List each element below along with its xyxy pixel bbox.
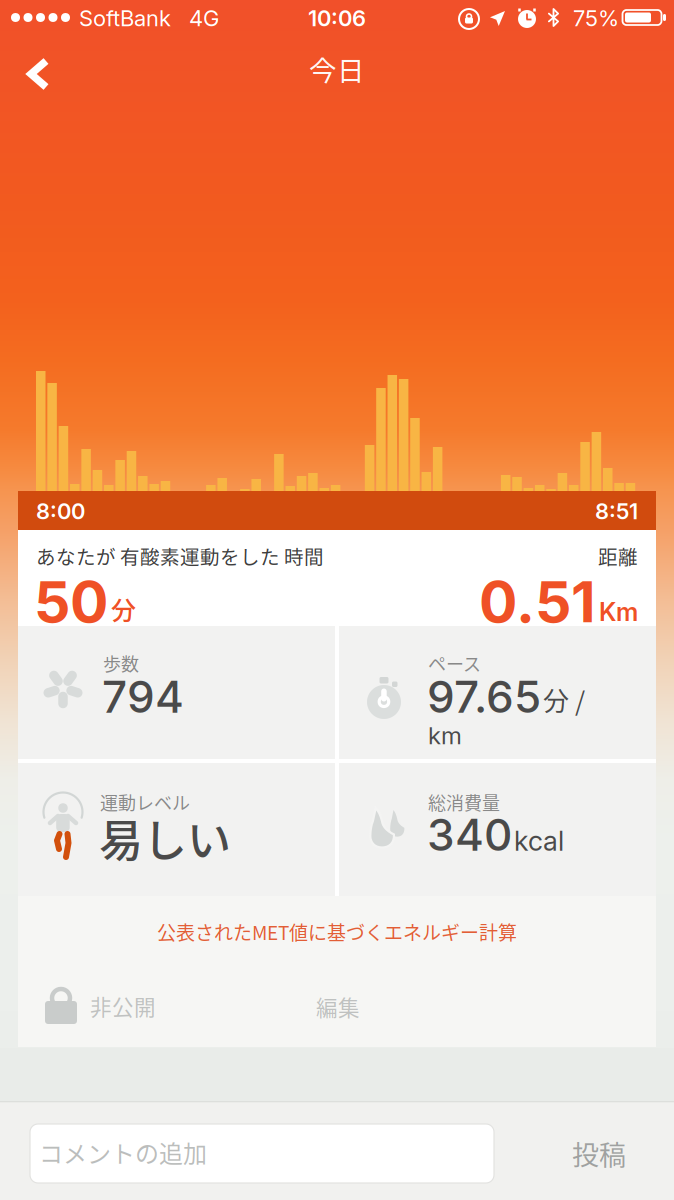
button[interactable]: 戻る <box>19 49 58 99</box>
staticText: kcal <box>514 825 564 857</box>
staticText: 投稿 <box>572 1134 626 1173</box>
staticText: 97.65 <box>427 670 541 723</box>
staticText: 非公開 <box>90 990 156 1021</box>
button[interactable]: 投稿 <box>572 1134 626 1173</box>
staticText: SoftBank <box>79 5 171 32</box>
staticText: 運動レベル <box>100 789 190 815</box>
staticText: 公表されたMET値に基づくエネルギー計算 <box>157 918 517 945</box>
staticText: Km <box>599 597 638 627</box>
staticText: 編集 <box>316 991 360 1022</box>
staticText: ペース <box>428 650 481 676</box>
staticText: 8:51 <box>595 498 638 525</box>
button[interactable]: 編集 <box>316 991 360 1022</box>
staticText: 今日 <box>309 49 365 89</box>
button[interactable]: 非公開 <box>45 987 156 1025</box>
staticText: 易しい <box>99 806 231 870</box>
staticText: 歩数 <box>103 650 139 676</box>
staticText: 距離 <box>598 542 638 570</box>
staticText: 8:00 <box>36 498 85 525</box>
staticText: 分 <box>111 591 136 627</box>
button[interactable]: コメントの追加 <box>30 1124 494 1183</box>
staticText: 75% <box>573 5 619 32</box>
staticText: 794 <box>102 670 184 723</box>
staticText: あなたが 有酸素運動をした 時間 <box>36 542 324 570</box>
staticText: km <box>428 721 462 750</box>
staticText: 総消費量 <box>428 789 500 815</box>
staticText: 分 / <box>543 681 585 718</box>
staticText: 10:06 <box>308 5 366 32</box>
staticText: コメントの追加 <box>39 1135 207 1170</box>
staticText: 340 <box>427 808 512 861</box>
staticText: 4G <box>189 5 219 32</box>
staticText: 0.51 <box>479 567 596 636</box>
staticText: 50 <box>34 567 108 636</box>
